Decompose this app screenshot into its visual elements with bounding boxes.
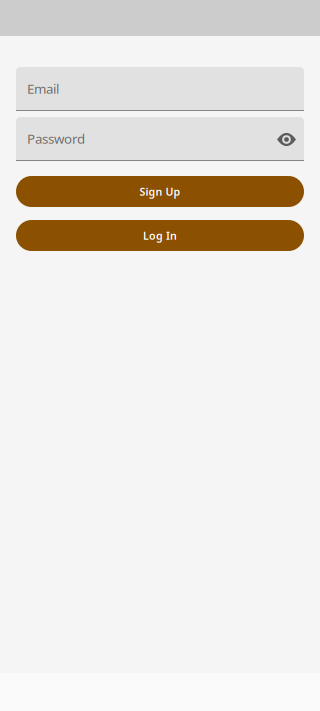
staticText: Log In xyxy=(143,228,177,243)
button[interactable]: Sign Up xyxy=(16,176,304,207)
button[interactable]: Show password xyxy=(277,123,304,154)
staticText: Password xyxy=(27,130,85,147)
staticText: Sign Up xyxy=(139,184,180,199)
staticText: Email xyxy=(27,80,59,97)
button[interactable]: Log In xyxy=(16,220,304,251)
